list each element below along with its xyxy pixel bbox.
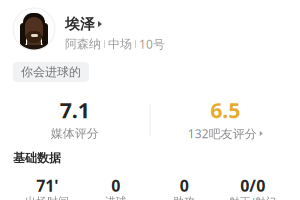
staticText: 埃泽 — [65, 15, 95, 33]
staticText: 0 — [180, 175, 189, 196]
staticText: 132吧友评分 — [188, 125, 257, 141]
staticText: 媒体评分 — [51, 126, 99, 141]
staticText: 71' — [36, 175, 58, 196]
staticText: 出场时间 — [25, 195, 69, 200]
staticText: 射正/射门 — [229, 194, 277, 200]
staticText: 0/0 — [240, 175, 265, 196]
staticText: 中场 — [108, 37, 132, 51]
staticText: 基础数据 — [13, 151, 61, 165]
button[interactable]: 6.5 — [150, 102, 300, 139]
staticText: 7.1 — [60, 96, 90, 124]
staticText: 0 — [111, 175, 120, 196]
staticText: 6.5 — [210, 96, 240, 124]
staticText: 你会进球的 — [21, 65, 81, 79]
staticText: 进球 — [105, 195, 127, 200]
staticText: 10号 — [139, 36, 165, 52]
staticText: 助攻 — [173, 195, 195, 200]
staticText: 阿森纳 — [65, 37, 101, 51]
button[interactable]: 埃泽 — [0, 0, 300, 50]
